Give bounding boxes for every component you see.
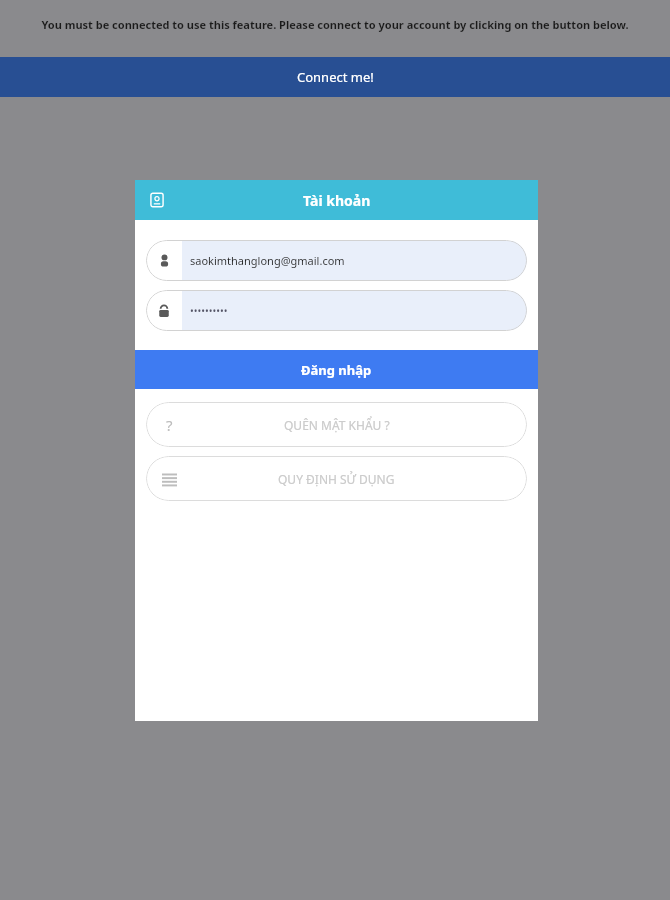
button[interactable]: Đăng nhập bbox=[135, 350, 538, 389]
button[interactable]: saokimthanglong@gmail.com bbox=[146, 240, 527, 281]
button[interactable]: Account card bbox=[143, 186, 171, 214]
staticText: Connect me! bbox=[297, 68, 374, 86]
staticText: QUY ĐỊNH SỬ DỤNG bbox=[278, 471, 395, 487]
staticText: ? bbox=[166, 415, 173, 435]
button[interactable]: QUY ĐỊNH SỬ DỤNG bbox=[146, 456, 527, 501]
staticText: QUÊN MẬT KHẨU ? bbox=[284, 417, 390, 433]
button[interactable]: Connect me! bbox=[0, 57, 670, 97]
staticText: saokimthanglong@gmail.com bbox=[190, 253, 345, 268]
staticText: •••••••••• bbox=[190, 304, 228, 318]
staticText: You must be connected to use this featur… bbox=[41, 17, 629, 32]
button[interactable]: ? bbox=[146, 402, 527, 447]
staticText: Đăng nhập bbox=[301, 361, 372, 379]
button[interactable]: •••••••••• bbox=[146, 290, 527, 331]
staticText: Tài khoản bbox=[303, 191, 371, 210]
